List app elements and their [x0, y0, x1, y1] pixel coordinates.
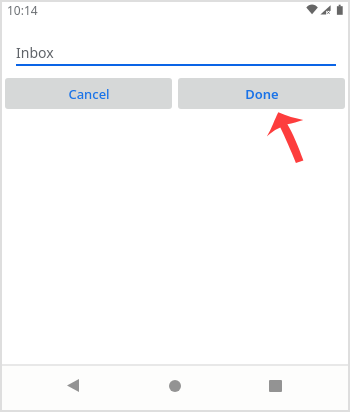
- button[interactable]: Cancel: [5, 78, 172, 109]
- staticText: 10:14: [7, 2, 38, 18]
- staticText: Done: [245, 85, 279, 103]
- button[interactable]: Recent apps: [262, 372, 289, 399]
- button[interactable]: Done: [178, 78, 345, 109]
- staticText: Inbox: [16, 43, 54, 62]
- button[interactable]: Home: [161, 372, 188, 399]
- staticText: Cancel: [68, 85, 110, 103]
- button[interactable]: Back: [59, 372, 86, 399]
